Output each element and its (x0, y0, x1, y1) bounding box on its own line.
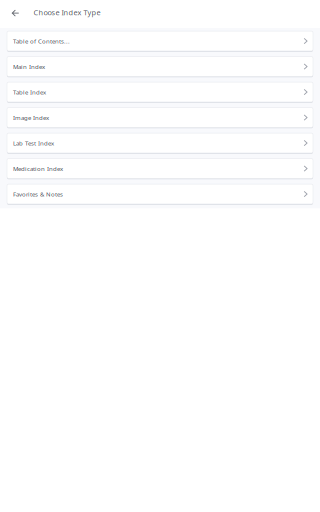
button[interactable]: Lab Test Index (7, 133, 313, 153)
button[interactable]: Medication Index (7, 159, 313, 178)
button[interactable]: Image Index (7, 108, 313, 127)
staticText: Lab Test Index (13, 139, 54, 147)
staticText: Table Index (13, 88, 46, 96)
button[interactable]: Table of Contents... (7, 31, 313, 51)
staticText: Image Index (13, 113, 49, 122)
button[interactable]: Back (7, 0, 23, 28)
staticText: Medication Index (13, 164, 63, 173)
staticText: Choose Index Type (33, 7, 100, 17)
staticText: Table of Contents... (13, 37, 70, 45)
staticText: Main Index (13, 62, 45, 71)
button[interactable]: Favorites & Notes (7, 184, 313, 204)
staticText: Favorites & Notes (13, 190, 63, 198)
button[interactable]: Main Index (7, 57, 313, 76)
button[interactable]: Table Index (7, 82, 313, 102)
